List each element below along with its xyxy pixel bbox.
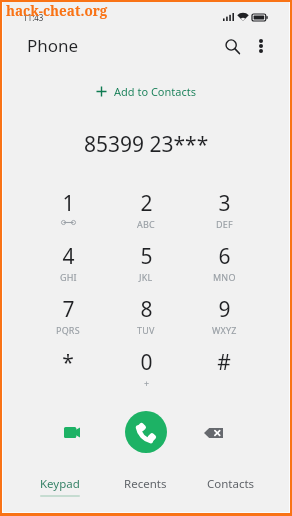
button[interactable]: 2 <box>107 189 185 242</box>
staticText: TUV <box>137 324 155 336</box>
staticText: # <box>217 348 231 377</box>
button[interactable]: Backspace <box>193 413 233 453</box>
button[interactable]: 5 <box>107 242 185 295</box>
staticText: 11:43 <box>23 12 44 23</box>
staticText: WXYZ <box>212 324 237 336</box>
button[interactable]: Recents <box>103 469 188 501</box>
button[interactable]: 0 <box>107 348 185 401</box>
staticText: 7 <box>62 295 75 324</box>
button[interactable]: 8 <box>107 295 185 348</box>
staticText: 4 <box>62 242 75 271</box>
staticText: Recents <box>124 476 167 492</box>
button[interactable]: 4 <box>29 242 107 295</box>
button[interactable]: 3 <box>185 189 263 242</box>
staticText: * <box>62 348 74 377</box>
staticText: 85399 23*** <box>84 130 209 159</box>
staticText: Keypad <box>40 476 80 492</box>
button[interactable]: 7 <box>29 295 107 348</box>
staticText: DEF <box>216 218 233 230</box>
button[interactable]: 9 <box>185 295 263 348</box>
staticText: 3 <box>218 189 231 218</box>
button[interactable]: More options <box>247 32 275 60</box>
staticText: 0 <box>140 348 153 377</box>
staticText: PQRS <box>56 324 80 336</box>
button[interactable]: Keypad <box>17 469 103 501</box>
staticText: MNO <box>213 271 236 283</box>
staticText: + <box>144 377 150 389</box>
button[interactable]: Search <box>217 31 247 61</box>
staticText: 2 <box>140 189 153 218</box>
button[interactable]: Call <box>125 411 167 453</box>
button[interactable]: * <box>29 348 107 401</box>
staticText: GHI <box>60 271 77 283</box>
button[interactable]: Video call <box>52 412 92 452</box>
staticText: Contacts <box>207 476 255 492</box>
staticText: 5 <box>140 242 153 271</box>
staticText: Phone <box>27 34 79 57</box>
button[interactable]: 6 <box>185 242 263 295</box>
staticText: ABC <box>137 218 155 230</box>
button[interactable]: 1 <box>29 189 107 242</box>
staticText: hack-cheat.org <box>6 2 108 20</box>
button[interactable]: # <box>185 348 263 401</box>
staticText: Add to Contacts <box>114 84 196 99</box>
staticText: 6 <box>218 242 231 271</box>
button[interactable]: Contacts <box>188 469 273 501</box>
button[interactable]: Add to Contacts <box>88 81 204 102</box>
staticText: JKL <box>139 271 153 283</box>
staticText: 8 <box>140 295 153 324</box>
staticText: 1 <box>62 189 75 218</box>
staticText: 9 <box>218 295 231 324</box>
